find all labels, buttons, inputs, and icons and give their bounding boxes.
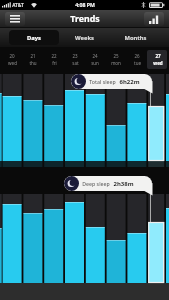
button[interactable]: Deep sleep [64, 176, 152, 191]
staticText: Weeks [75, 34, 94, 42]
button[interactable]: 25 [106, 52, 126, 60]
button[interactable]: 22 [44, 52, 64, 60]
staticText: 27 [155, 53, 161, 59]
staticText: 23 [72, 53, 78, 59]
staticText: thu [29, 60, 37, 66]
button[interactable]: Months [110, 30, 160, 45]
button[interactable]: 27 [148, 52, 168, 60]
staticText: 24 [92, 53, 98, 59]
staticText: Days [27, 34, 41, 42]
staticText: AT&T [12, 2, 24, 9]
button[interactable]: 23 [65, 52, 85, 60]
staticText: wed [8, 60, 17, 66]
staticText: 25 [113, 53, 119, 59]
button[interactable]: 20 [2, 52, 22, 60]
staticText: 4:08 PM [75, 1, 95, 8]
staticText: 26 [134, 53, 140, 59]
button[interactable] [144, 12, 164, 26]
staticText: fri [52, 60, 57, 66]
button[interactable]: Days [9, 30, 59, 45]
staticText: wed [153, 60, 163, 66]
button[interactable]: 26 [127, 52, 147, 60]
button[interactable]: Total sleep [71, 74, 152, 89]
button[interactable]: Weeks [59, 30, 109, 45]
button[interactable] [5, 12, 25, 26]
staticText: Trends [70, 13, 100, 25]
staticText: mon [111, 60, 121, 66]
staticText: tue [134, 60, 141, 66]
staticText: 21 [30, 53, 36, 59]
button[interactable]: 24 [85, 52, 105, 60]
staticText: 22 [51, 53, 57, 59]
staticText: sat [72, 60, 79, 66]
staticText: Months [124, 34, 147, 42]
button[interactable]: 21 [23, 52, 43, 60]
staticText: 2h38m [113, 180, 134, 188]
staticText: Deep sleep [82, 180, 110, 187]
staticText: 6h22m [119, 78, 140, 86]
staticText: 20 [9, 53, 15, 59]
staticText: sun [91, 60, 99, 66]
staticText: Total sleep [89, 78, 116, 85]
